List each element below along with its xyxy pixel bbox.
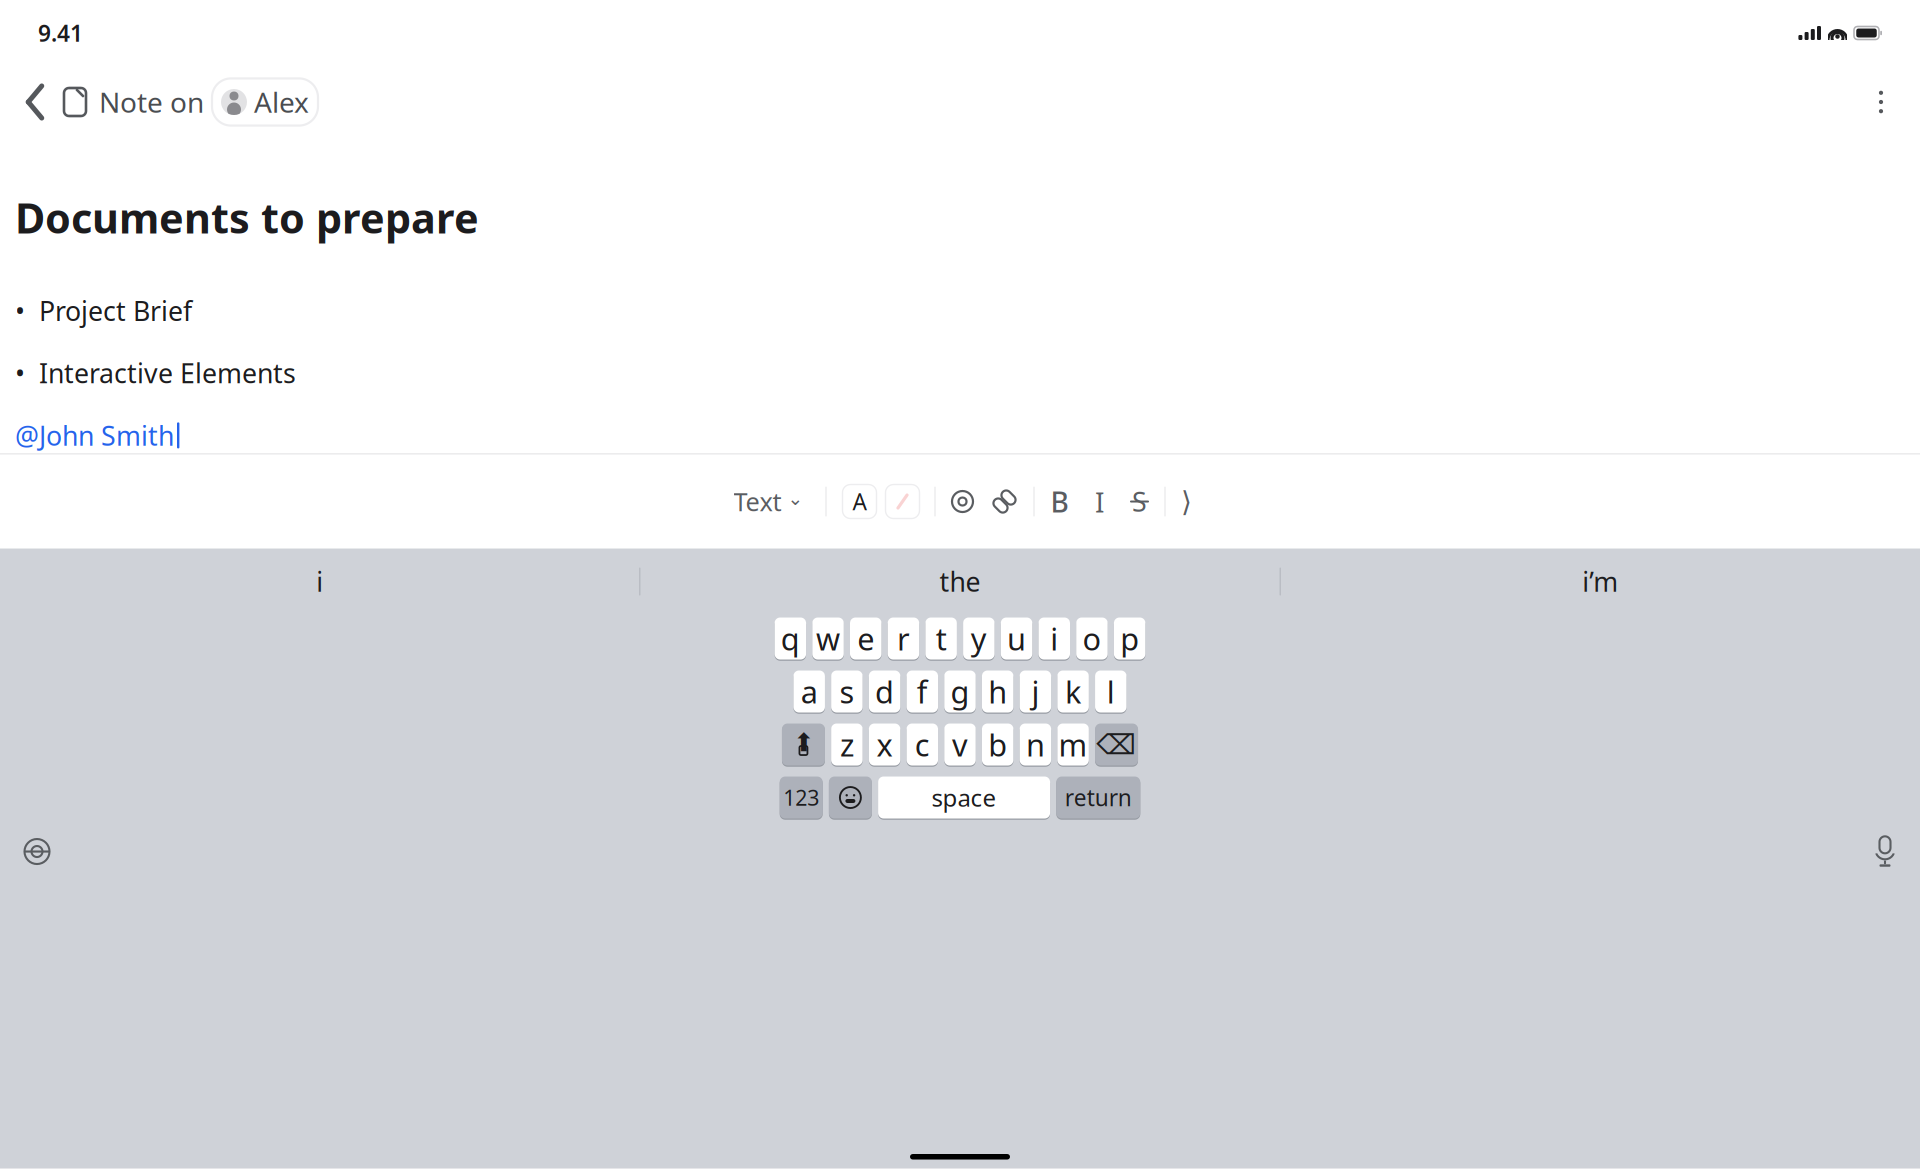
button[interactable]: m: [1057, 722, 1089, 766]
button[interactable]: Dictation: [1872, 835, 1898, 867]
staticText: u: [1007, 618, 1026, 659]
button[interactable]: y: [963, 616, 995, 660]
button[interactable]: s: [831, 669, 863, 713]
staticText: y: [971, 618, 987, 659]
staticText: @John Smith: [15, 418, 174, 453]
staticText: m: [1059, 724, 1088, 765]
button[interactable]: g: [944, 669, 976, 713]
button[interactable]: return: [1056, 775, 1140, 819]
button[interactable]: Strikethrough: [1122, 481, 1156, 521]
staticText: e: [857, 618, 874, 659]
button[interactable]: z: [831, 722, 863, 766]
button[interactable]: o: [1076, 616, 1108, 660]
button[interactable]: i: [0, 564, 639, 599]
staticText: i: [1050, 618, 1058, 659]
staticText: ⌫: [1096, 729, 1136, 760]
staticText: B: [1050, 483, 1068, 520]
staticText: q: [781, 618, 800, 659]
staticText: h: [988, 671, 1007, 712]
staticText: l: [1107, 671, 1115, 712]
button[interactable]: Insert link: [987, 481, 1021, 521]
staticText: return: [1065, 782, 1132, 813]
button[interactable]: Shared with Alex: [212, 78, 318, 126]
staticText: c: [915, 724, 930, 765]
button[interactable]: d: [869, 669, 900, 713]
button[interactable]: Mention: [945, 481, 979, 521]
button[interactable]: space: [878, 775, 1050, 819]
staticText: 123: [783, 783, 819, 812]
button[interactable]: e: [850, 616, 881, 660]
staticText: • Interactive Elements: [15, 355, 296, 391]
button[interactable]: i: [1038, 616, 1070, 660]
staticText: t: [936, 618, 947, 659]
staticText: a: [801, 671, 818, 712]
button[interactable]: b: [982, 722, 1013, 766]
staticText: i’m: [1582, 564, 1618, 599]
staticText: the: [939, 564, 980, 599]
staticText: s: [839, 671, 854, 712]
button[interactable]: Highlight: [885, 484, 919, 518]
staticText: k: [1065, 671, 1081, 712]
button[interactable]: r: [888, 616, 919, 660]
button[interactable]: Shift: [782, 722, 825, 766]
staticText: d: [875, 671, 894, 712]
button[interactable]: n: [1020, 722, 1051, 766]
staticText: Text: [733, 485, 781, 518]
button[interactable]: q: [775, 616, 806, 660]
staticText: v: [952, 724, 968, 765]
button[interactable]: Delete: [1095, 722, 1138, 766]
button[interactable]: p: [1114, 616, 1145, 660]
button[interactable]: i’m: [1281, 564, 1920, 599]
staticText: r: [897, 618, 910, 659]
staticText: I: [1095, 483, 1104, 520]
staticText: Documents to prepare: [15, 190, 479, 245]
button[interactable]: Emoji: [829, 775, 872, 819]
staticText: • Project Brief: [15, 293, 192, 328]
button[interactable]: x: [869, 722, 900, 766]
button[interactable]: w: [812, 616, 844, 660]
staticText: o: [1082, 618, 1101, 659]
button[interactable]: j: [1020, 669, 1051, 713]
button[interactable]: u: [1001, 616, 1032, 660]
staticText: z: [840, 724, 854, 765]
staticText: Note on: [99, 83, 204, 121]
button[interactable]: l: [1095, 669, 1126, 713]
staticText: ⌄: [787, 488, 803, 509]
staticText: f: [917, 671, 928, 712]
staticText: i: [316, 564, 323, 599]
staticText: S: [1132, 484, 1147, 519]
button[interactable]: a: [793, 669, 825, 713]
button[interactable]: Code: [1169, 481, 1203, 521]
staticText: ⟩: [1181, 486, 1192, 517]
staticText: Alex: [254, 83, 309, 121]
button[interactable]: Bold: [1042, 481, 1076, 521]
button[interactable]: Text style: [733, 485, 803, 518]
staticText: ⬆: [793, 728, 814, 757]
button[interactable]: v: [944, 722, 976, 766]
staticText: x: [877, 724, 893, 765]
staticText: j: [1031, 671, 1039, 712]
staticText: n: [1026, 724, 1045, 765]
button[interactable]: Italic: [1082, 481, 1116, 521]
staticText: space: [932, 782, 997, 813]
button[interactable]: c: [907, 722, 938, 766]
staticText: b: [988, 724, 1007, 765]
staticText: g: [950, 671, 969, 712]
button[interactable]: t: [925, 616, 957, 660]
button[interactable]: Back: [22, 80, 48, 124]
button[interactable]: Note on: [60, 83, 204, 121]
staticText: A: [852, 486, 866, 517]
button[interactable]: More options: [1864, 82, 1898, 122]
button[interactable]: h: [982, 669, 1013, 713]
staticText: w: [816, 618, 840, 659]
button[interactable]: f: [907, 669, 938, 713]
button[interactable]: k: [1057, 669, 1089, 713]
button[interactable]: the: [640, 564, 1280, 599]
button[interactable]: Text color: [842, 484, 876, 518]
staticText: p: [1120, 618, 1139, 659]
button[interactable]: Numbers: [780, 775, 823, 819]
button[interactable]: Next keyboard: [22, 836, 52, 866]
staticText: 9.41: [38, 18, 83, 48]
